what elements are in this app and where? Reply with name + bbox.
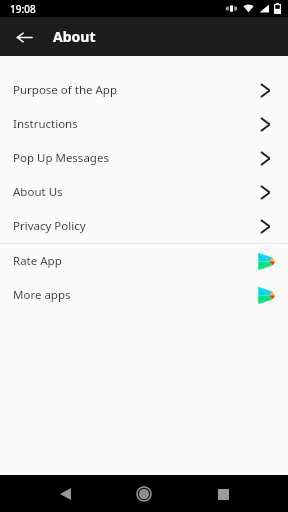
button[interactable]: Recent apps [210,481,236,507]
staticText: Pop Up Messages [13,150,109,166]
staticText: 19:08 [10,2,36,16]
button[interactable]: Back [52,481,78,507]
button[interactable]: About Us [0,175,288,209]
staticText: More apps [13,287,71,303]
button[interactable]: Home [131,481,157,507]
staticText: Privacy Policy [13,218,86,234]
button[interactable]: Back [8,21,40,53]
staticText: About [53,27,96,46]
staticText: About Us [13,184,63,200]
button[interactable]: Purpose of the App [0,73,288,107]
button[interactable]: More apps [0,278,288,312]
staticText: Instructions [13,116,78,132]
staticText: Purpose of the App [13,82,117,98]
button[interactable]: Instructions [0,107,288,141]
button[interactable]: Privacy Policy [0,209,288,243]
button[interactable]: Rate App [0,244,288,278]
staticText: Rate App [13,253,62,269]
button[interactable]: Pop Up Messages [0,141,288,175]
